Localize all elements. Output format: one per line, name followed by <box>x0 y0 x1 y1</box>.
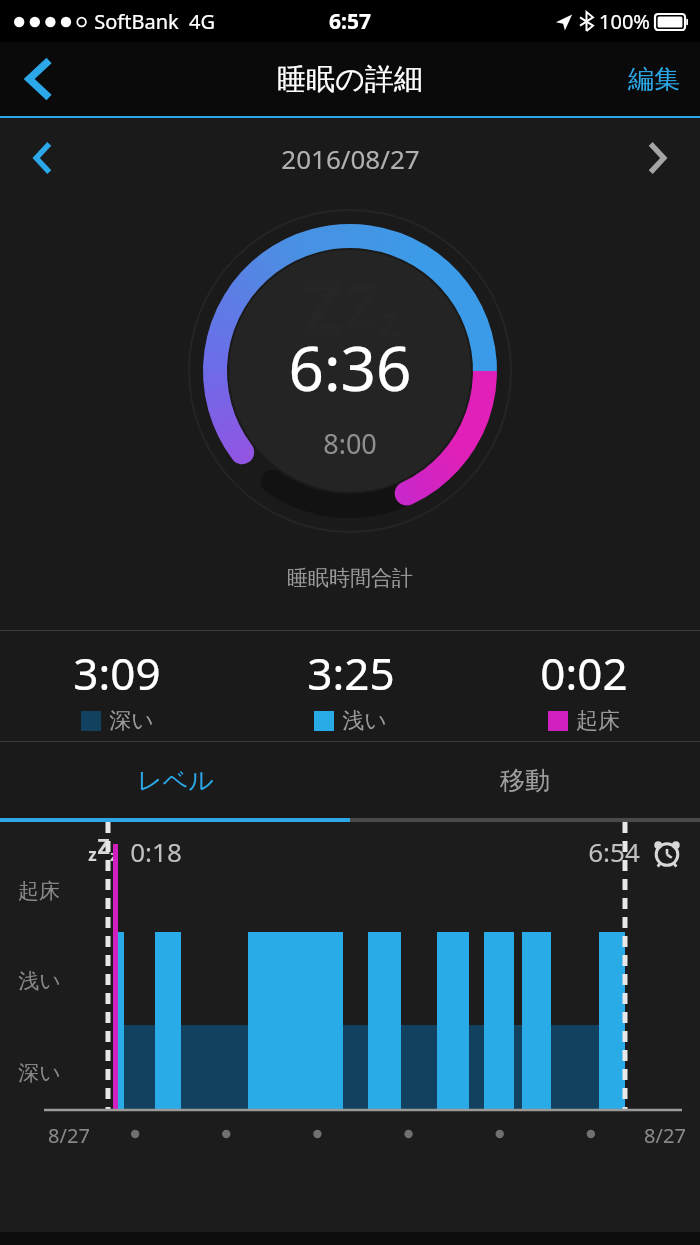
button[interactable]: 0:02 <box>467 631 700 735</box>
staticText: 3:25 <box>307 643 395 703</box>
staticText: 6:36 <box>288 325 412 409</box>
staticText: z <box>88 843 97 866</box>
button[interactable]: レベル <box>0 742 350 818</box>
staticText: Z <box>97 832 110 861</box>
staticText: z <box>379 291 400 348</box>
button[interactable]: Next day <box>616 118 700 198</box>
staticText: 深い <box>109 707 154 735</box>
button[interactable]: 移動 <box>350 742 700 818</box>
button[interactable]: Previous day <box>0 118 84 198</box>
staticText: 深い <box>18 1060 61 1086</box>
button[interactable]: 3:09 <box>0 631 234 735</box>
button[interactable]: Back <box>0 42 76 116</box>
staticText: 4G <box>189 8 215 35</box>
staticText: 8:00 <box>323 425 377 462</box>
staticText: 浅い <box>18 968 61 994</box>
button[interactable]: 編集 <box>608 42 700 116</box>
staticText: 移動 <box>500 765 550 796</box>
staticText: 浅い <box>342 707 387 735</box>
staticText: 0:18 <box>130 834 182 869</box>
staticText: Z <box>300 254 345 358</box>
other: Alarm <box>652 836 682 868</box>
staticText: 睡眠時間合計 <box>287 565 413 591</box>
staticText: 6:54 <box>588 834 640 869</box>
staticText: 2016/08/27 <box>281 141 420 176</box>
staticText: 起床 <box>576 707 620 735</box>
staticText: SoftBank <box>94 8 179 35</box>
staticText: 8/27 <box>48 1122 90 1149</box>
staticText: 0:02 <box>540 643 628 703</box>
staticText: 編集 <box>628 63 680 96</box>
button[interactable]: 3:25 <box>234 631 467 735</box>
staticText: 起床 <box>18 878 60 904</box>
staticText: z <box>110 845 118 865</box>
staticText: 6:57 <box>329 7 371 36</box>
staticText: レベル <box>137 765 214 796</box>
staticText: 睡眠の詳細 <box>277 61 423 98</box>
staticText: 100% <box>599 8 650 35</box>
staticText: 8/27 <box>644 1122 686 1149</box>
button[interactable] <box>0 822 700 1232</box>
staticText: 3:09 <box>73 643 161 703</box>
